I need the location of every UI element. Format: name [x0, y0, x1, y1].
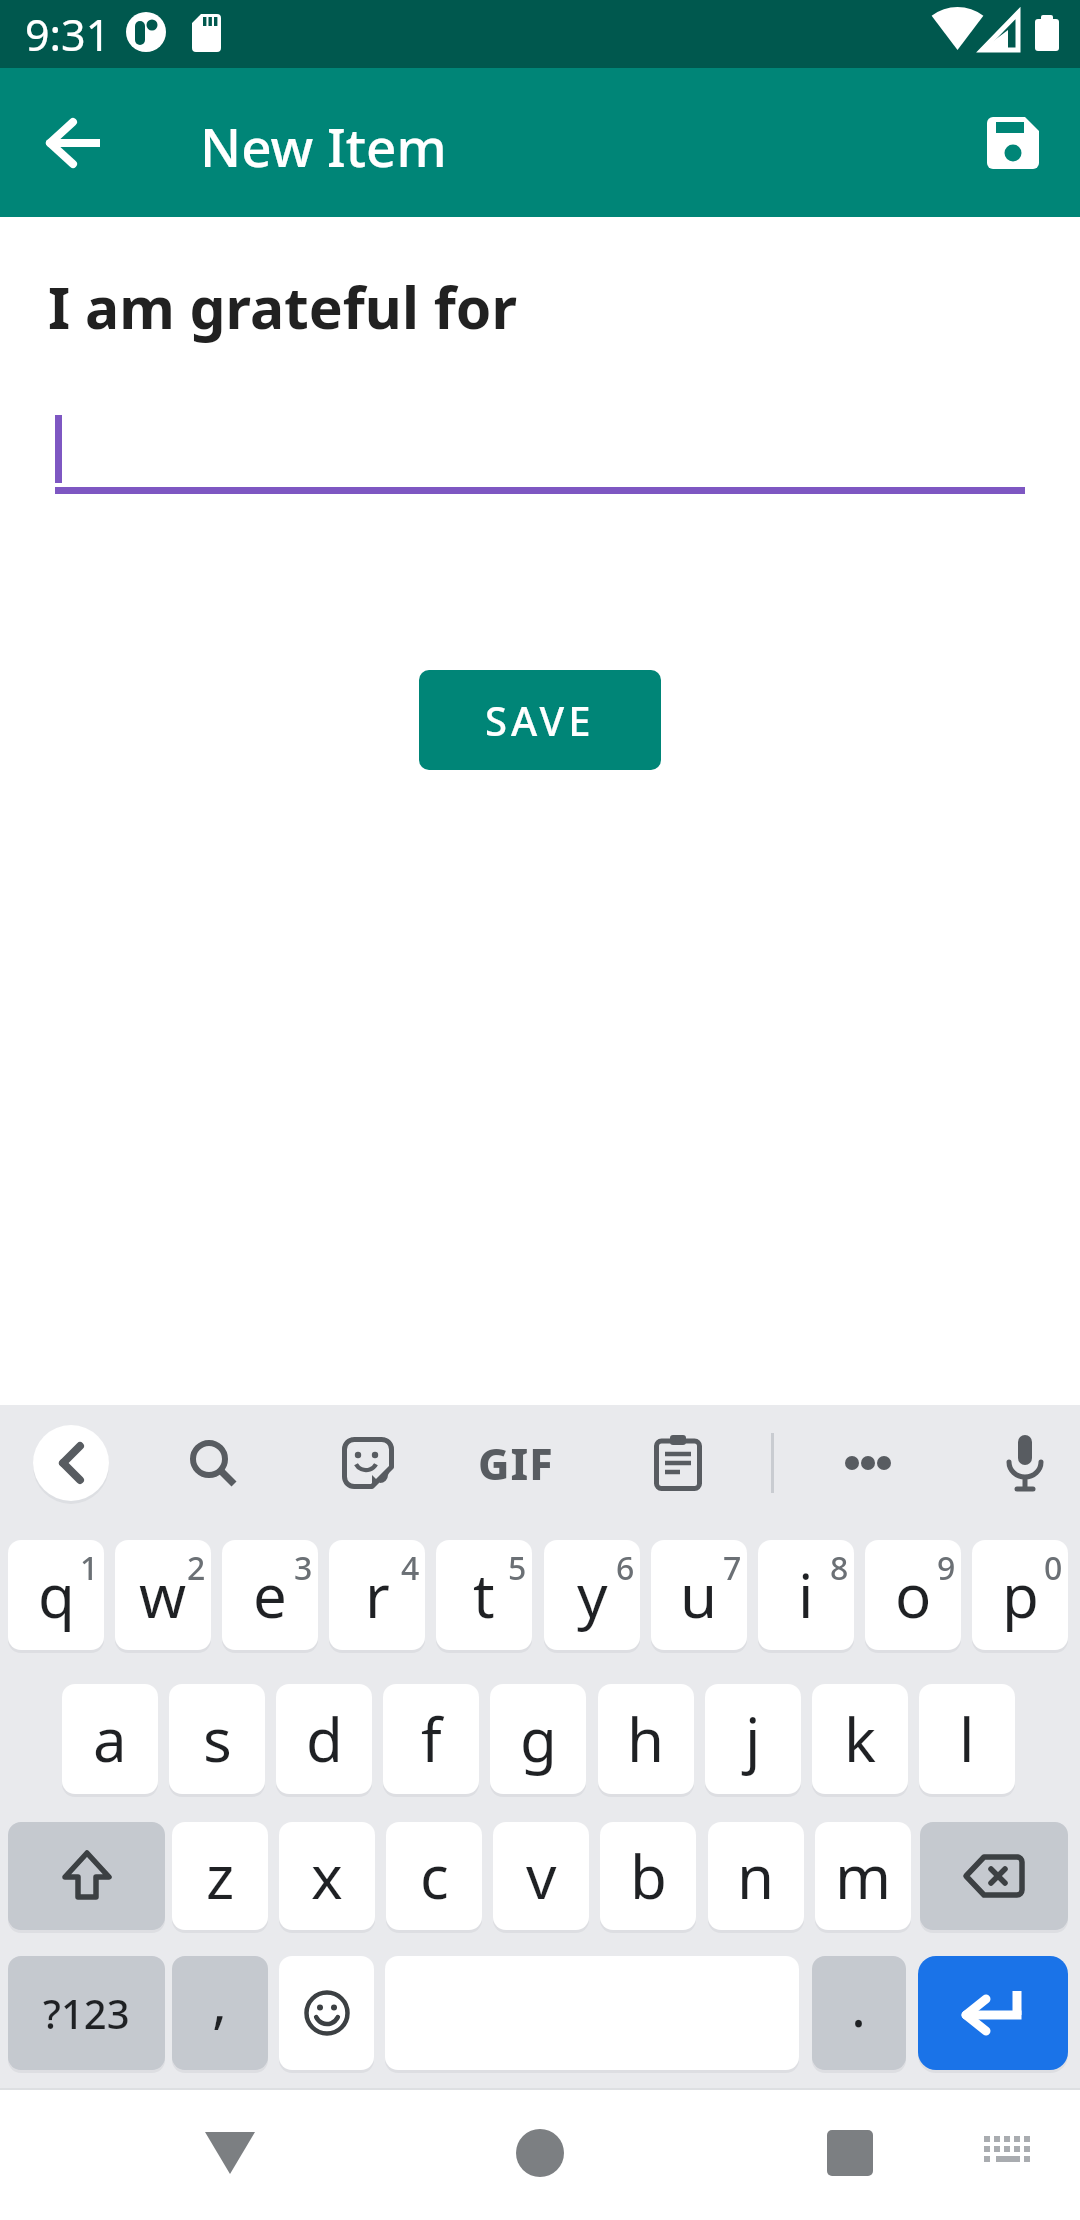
- button[interactable]: z: [172, 1822, 268, 1930]
- button[interactable]: b: [600, 1822, 696, 1930]
- button[interactable]: x: [279, 1822, 375, 1930]
- staticText: g: [520, 1698, 557, 1780]
- staticText: z: [206, 1835, 235, 1917]
- button[interactable]: p: [972, 1540, 1068, 1650]
- button[interactable]: n: [708, 1822, 804, 1930]
- staticText: y: [577, 1554, 608, 1636]
- button[interactable]: w: [115, 1540, 211, 1650]
- staticText: 4: [401, 1546, 420, 1580]
- button[interactable]: ?123: [8, 1956, 165, 2070]
- button[interactable]: [8, 1822, 165, 1930]
- staticText: 5: [508, 1546, 527, 1580]
- staticText: 3: [294, 1546, 313, 1580]
- staticText: x: [311, 1835, 343, 1917]
- staticText: 8: [830, 1546, 849, 1580]
- staticText: 0: [1044, 1546, 1063, 1580]
- button[interactable]: [918, 1956, 1068, 2070]
- button[interactable]: j: [705, 1684, 801, 1794]
- staticText: p: [1002, 1554, 1039, 1636]
- staticText: w: [139, 1554, 187, 1636]
- button[interactable]: m: [815, 1822, 911, 1930]
- button[interactable]: [279, 1956, 374, 2070]
- button[interactable]: [960, 2098, 1056, 2208]
- button[interactable]: l: [919, 1684, 1015, 1794]
- button[interactable]: [965, 95, 1061, 191]
- button[interactable]: SAVE: [419, 670, 661, 770]
- button[interactable]: y: [544, 1540, 640, 1650]
- button[interactable]: ,: [172, 1956, 268, 2070]
- staticText: o: [895, 1554, 932, 1636]
- button[interactable]: o: [865, 1540, 961, 1650]
- button[interactable]: .: [812, 1956, 906, 2070]
- staticText: 2: [187, 1546, 206, 1580]
- button[interactable]: e: [222, 1540, 318, 1650]
- staticText: a: [93, 1698, 127, 1780]
- button[interactable]: [331, 1426, 405, 1500]
- button[interactable]: [641, 1426, 715, 1500]
- button[interactable]: h: [598, 1684, 694, 1794]
- button[interactable]: t: [436, 1540, 532, 1650]
- staticText: f: [421, 1698, 442, 1780]
- button[interactable]: f: [383, 1684, 479, 1794]
- staticText: 9: [937, 1546, 956, 1580]
- staticText: l: [959, 1698, 975, 1780]
- staticText: b: [630, 1835, 667, 1917]
- button[interactable]: a: [62, 1684, 158, 1794]
- staticText: SAVE: [485, 693, 595, 747]
- button[interactable]: [175, 2098, 285, 2208]
- staticText: t: [473, 1554, 495, 1636]
- button[interactable]: u: [651, 1540, 747, 1650]
- button[interactable]: [485, 2098, 595, 2208]
- button[interactable]: [176, 1426, 250, 1500]
- staticText: n: [737, 1835, 775, 1917]
- button[interactable]: [920, 1822, 1068, 1930]
- staticText: c: [420, 1835, 449, 1917]
- button[interactable]: [33, 1425, 109, 1501]
- staticText: .: [851, 1967, 867, 2043]
- button[interactable]: [27, 95, 123, 191]
- button[interactable]: g: [490, 1684, 586, 1794]
- staticText: ?123: [43, 1986, 130, 2040]
- button[interactable]: r: [329, 1540, 425, 1650]
- staticText: j: [745, 1698, 761, 1780]
- button[interactable]: v: [493, 1822, 589, 1930]
- staticText: s: [203, 1698, 232, 1780]
- staticText: 9:31: [25, 5, 111, 64]
- staticText: New Item: [200, 110, 447, 180]
- staticText: v: [526, 1835, 557, 1917]
- button[interactable]: [795, 2098, 905, 2208]
- staticText: k: [844, 1698, 877, 1780]
- staticText: m: [835, 1835, 892, 1917]
- staticText: u: [680, 1554, 718, 1636]
- staticText: 6: [616, 1546, 635, 1580]
- staticText: r: [365, 1554, 390, 1636]
- staticText: h: [627, 1698, 665, 1780]
- button[interactable]: [988, 1426, 1062, 1500]
- staticText: ,: [212, 1963, 228, 2039]
- staticText: 7: [723, 1546, 742, 1580]
- staticText: GIF: [478, 1434, 554, 1493]
- staticText: e: [253, 1554, 287, 1636]
- button[interactable]: k: [812, 1684, 908, 1794]
- staticText: d: [306, 1698, 343, 1780]
- button[interactable]: d: [276, 1684, 372, 1794]
- staticText: q: [38, 1554, 75, 1636]
- button[interactable]: q: [8, 1540, 104, 1650]
- button[interactable]: i: [758, 1540, 854, 1650]
- button[interactable]: c: [386, 1822, 482, 1930]
- button[interactable]: s: [169, 1684, 265, 1794]
- button[interactable]: [831, 1426, 905, 1500]
- staticText: I am grateful for: [48, 268, 517, 346]
- staticText: 1: [80, 1546, 99, 1580]
- staticText: i: [798, 1554, 814, 1636]
